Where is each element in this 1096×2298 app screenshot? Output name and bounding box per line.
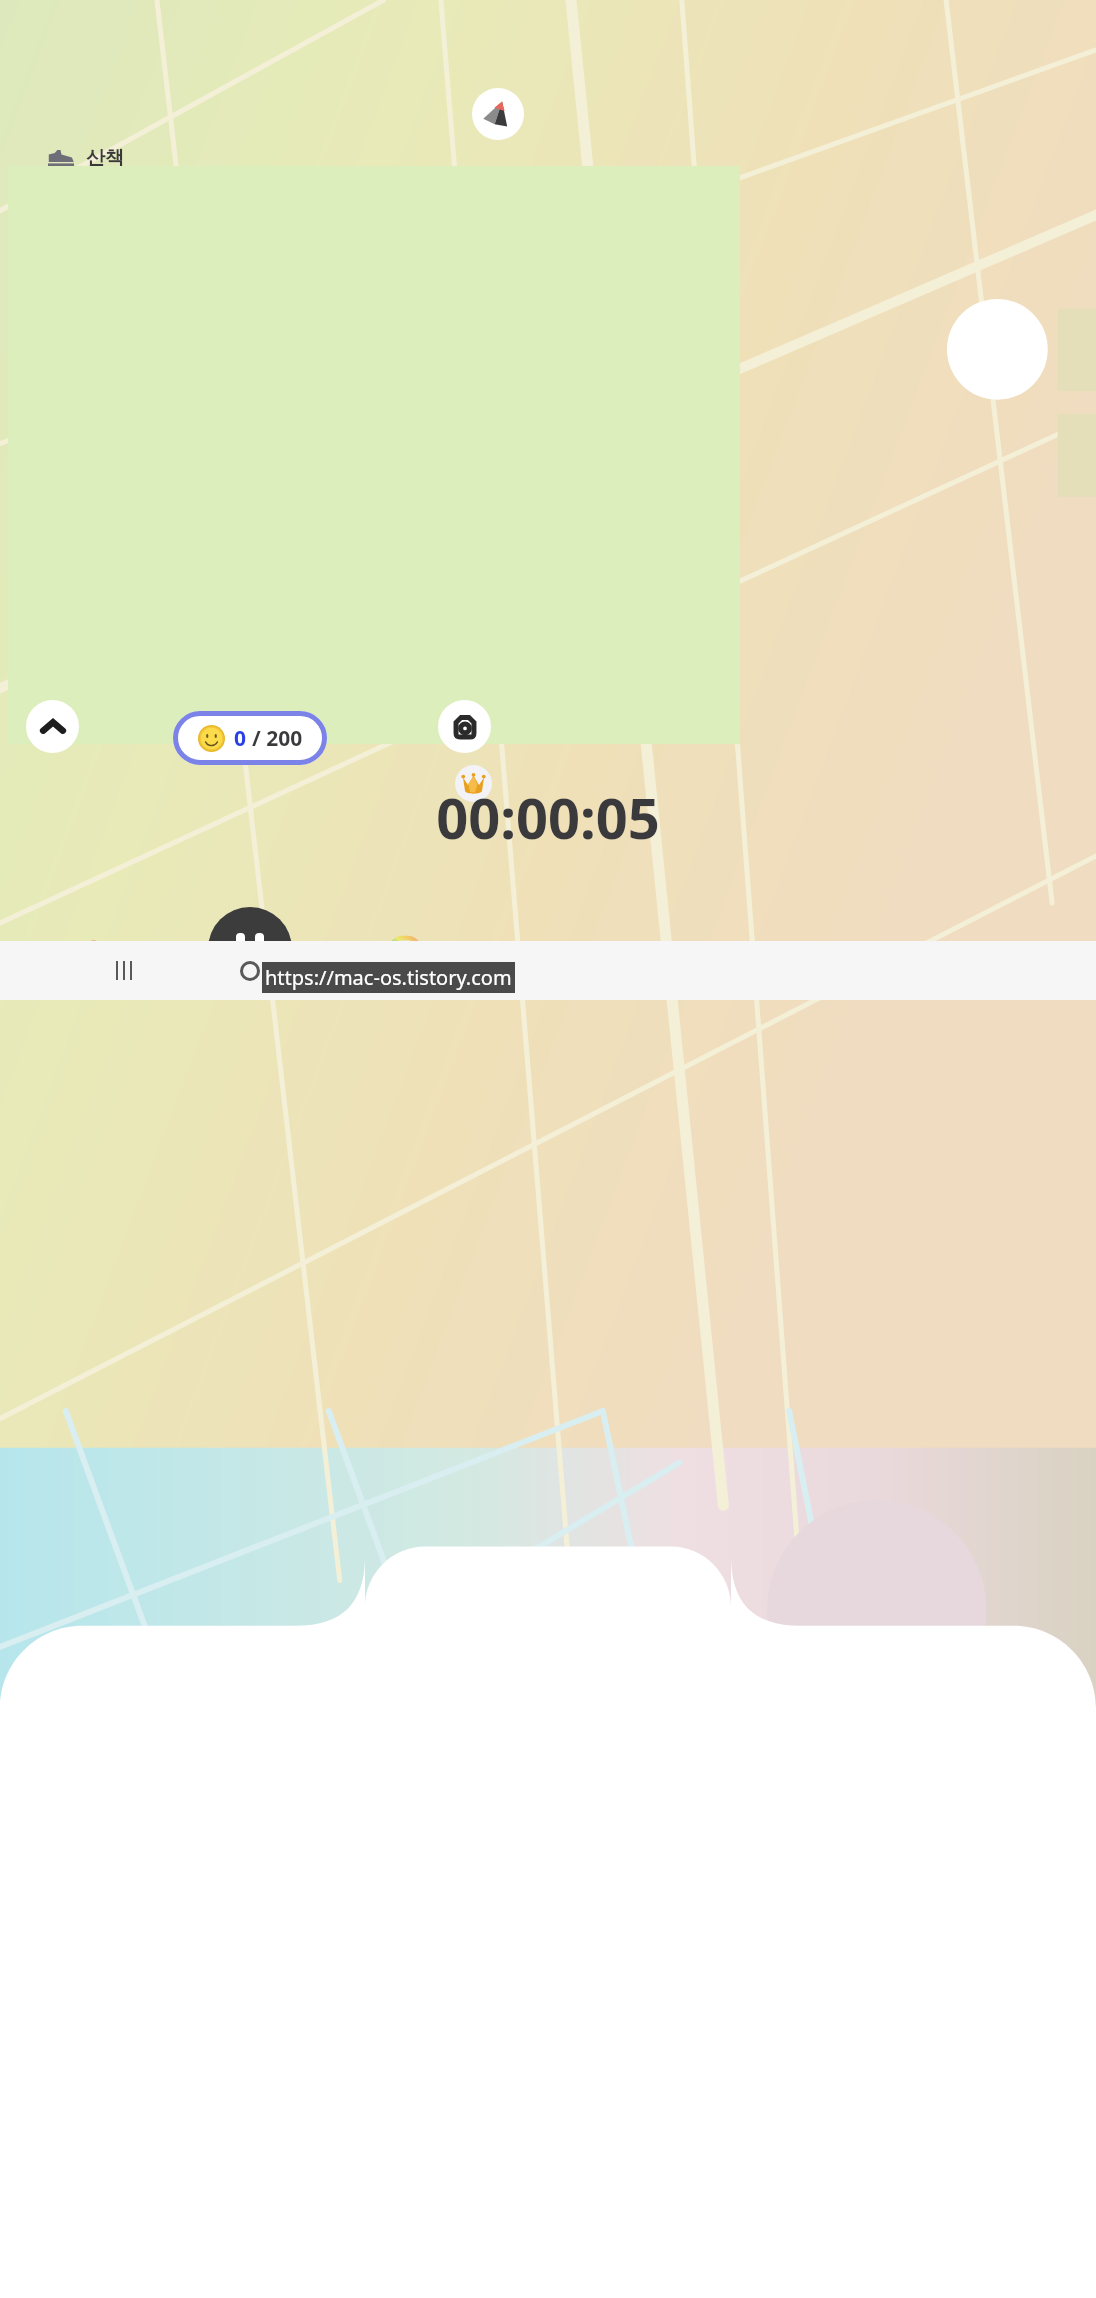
staticText: 00:00:05 — [436, 779, 660, 855]
button[interactable]: 0 — [173, 711, 327, 765]
button[interactable]: Rank — [455, 765, 492, 802]
staticText: / 200 — [252, 724, 303, 753]
button[interactable]: Recents — [92, 941, 156, 1000]
button[interactable]: Expand — [26, 700, 79, 753]
button[interactable]: Back — [358, 941, 422, 1000]
staticText: 0 — [234, 724, 247, 753]
staticText: 산책 — [86, 146, 124, 170]
button[interactable]: Cheer — [77, 933, 121, 977]
staticText: https://mac-os.tistory.com — [265, 964, 512, 991]
button[interactable]: Navigation direction — [472, 88, 524, 140]
button[interactable]: Camera — [438, 700, 491, 753]
button[interactable]: Sticker — [383, 931, 427, 975]
button[interactable]: Pause — [208, 907, 292, 991]
button[interactable]: Home — [218, 941, 282, 1000]
